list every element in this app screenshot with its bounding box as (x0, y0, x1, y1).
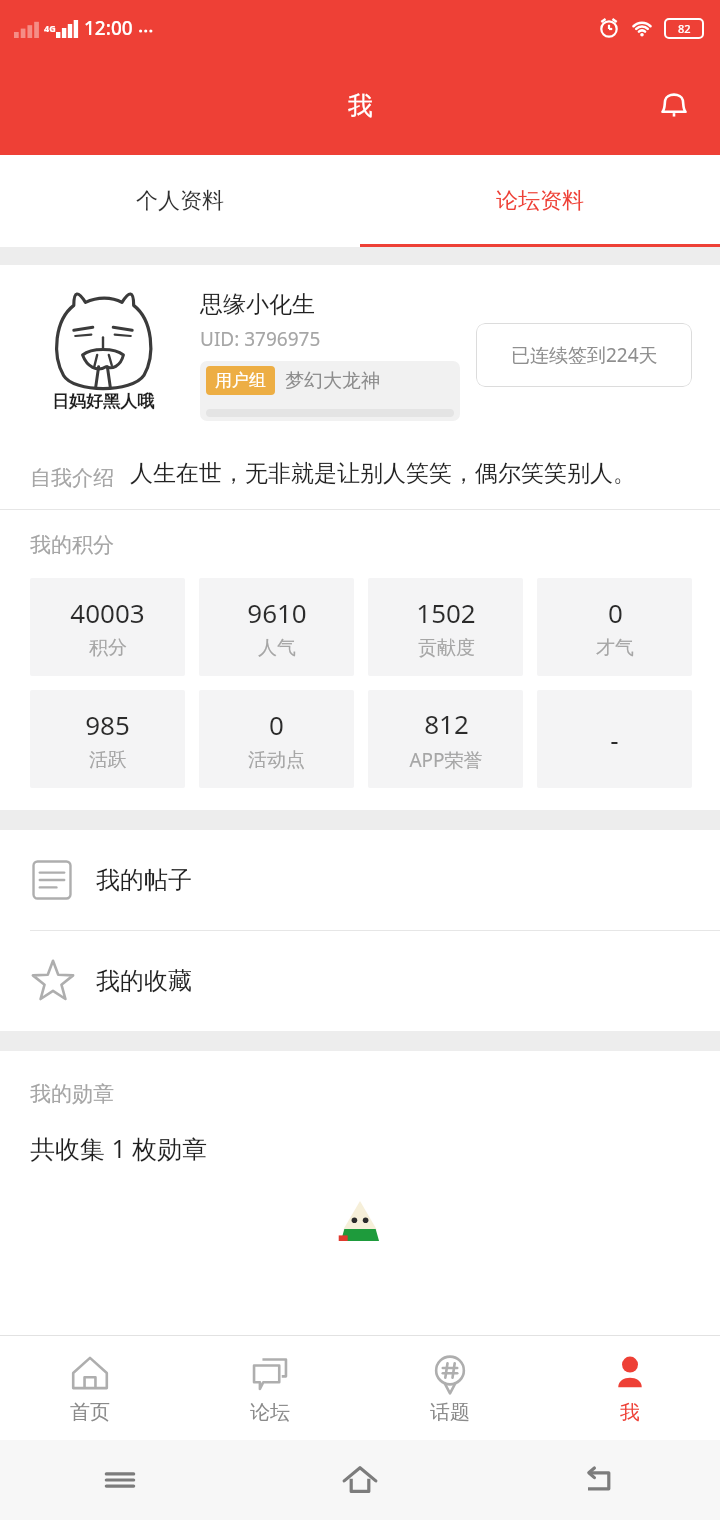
button[interactable]: Recent apps (0, 1440, 240, 1520)
staticText: 人气 (258, 636, 296, 660)
staticText: 才气 (596, 636, 634, 660)
staticText: 我 (620, 1400, 640, 1425)
button[interactable]: 0 (537, 578, 692, 676)
staticText: 我的积分 (30, 532, 114, 558)
staticText: UID: 3796975 (200, 326, 321, 352)
staticText: 首页 (70, 1400, 110, 1425)
button[interactable]: 已连续签到224天 (476, 323, 692, 387)
button[interactable]: 9610 (199, 578, 354, 676)
button[interactable]: Back (480, 1440, 720, 1520)
staticText: 积分 (89, 636, 127, 660)
staticText: 已连续签到224天 (511, 342, 658, 368)
staticText: 40003 (70, 595, 145, 630)
staticText: 活跃 (89, 748, 127, 772)
button[interactable]: 我的收藏 (0, 931, 720, 1031)
staticText: 82 (678, 21, 691, 36)
staticText: 日妈好黑人哦 (52, 391, 154, 412)
staticText: 论坛 (250, 1400, 290, 1425)
button[interactable]: 论坛 (180, 1336, 360, 1440)
button[interactable]: 个人资料 (0, 155, 360, 247)
staticText: 我 (348, 90, 373, 121)
staticText: 9610 (247, 595, 307, 630)
staticText: 812 (424, 706, 469, 741)
staticText: 我的勋章 (30, 1081, 114, 1107)
staticText: 个人资料 (136, 187, 224, 215)
button[interactable]: 话题 (360, 1336, 540, 1440)
staticText: 我的收藏 (96, 966, 192, 996)
staticText: 活动点 (248, 748, 305, 772)
button[interactable]: 我的帖子 (0, 830, 720, 930)
staticText: 人生在世，无非就是让别人笑笑，偶尔笑笑别人。 (130, 459, 636, 488)
button[interactable]: 1502 (368, 578, 523, 676)
staticText: 自我介绍 (30, 465, 114, 491)
staticText: 4G (44, 22, 56, 34)
staticText: 我的帖子 (96, 865, 192, 895)
button[interactable]: 812 (368, 690, 523, 788)
staticText: 12:00 (84, 15, 133, 41)
button[interactable]: 0 (199, 690, 354, 788)
staticText: 用户组 (215, 370, 266, 391)
button[interactable]: 985 (30, 690, 185, 788)
staticText: 0 (269, 707, 284, 742)
button[interactable]: Home (240, 1440, 480, 1520)
staticText: - (610, 722, 619, 757)
button[interactable]: 首页 (0, 1336, 180, 1440)
button[interactable]: 我 (540, 1336, 720, 1440)
staticText: APP荣誉 (409, 747, 483, 773)
button[interactable]: Notifications (646, 77, 702, 133)
staticText: 共收集 1 枚勋章 (30, 1131, 208, 1165)
staticText: 1502 (416, 595, 476, 630)
button[interactable]: 40003 (30, 578, 185, 676)
staticText: 0 (608, 595, 623, 630)
button[interactable]: - (537, 690, 692, 788)
staticText: 话题 (430, 1400, 470, 1425)
button[interactable]: 用户组 (200, 361, 460, 421)
staticText: 贡献度 (418, 636, 475, 660)
button[interactable]: 论坛资料 (360, 155, 720, 247)
staticText: 思缘小化生 (200, 290, 315, 319)
staticText: 论坛资料 (496, 187, 584, 215)
staticText: 985 (85, 707, 130, 742)
staticText: 梦幻大龙神 (285, 369, 380, 393)
